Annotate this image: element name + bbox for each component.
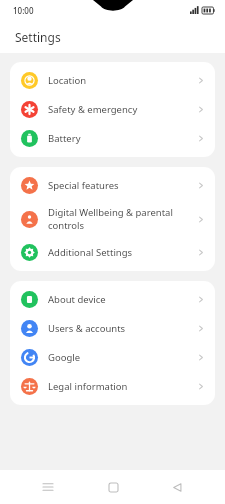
staticText: Additional Settings [48, 246, 191, 259]
staticText: Legal information [48, 380, 191, 393]
button[interactable]: Special features [10, 171, 215, 200]
button[interactable]: Safety & emergency [10, 95, 215, 124]
staticText: 10:00 [13, 5, 34, 16]
button[interactable]: Digital Wellbeing & parental controls [10, 200, 215, 238]
button[interactable]: Additional Settings [10, 238, 215, 267]
button[interactable]: Battery [10, 124, 215, 153]
staticText: Battery [48, 132, 191, 145]
staticText: Users & accounts [48, 322, 191, 335]
button[interactable]: Location [10, 66, 215, 95]
staticText: Safety & emergency [48, 103, 191, 116]
button[interactable]: Recent apps [32, 471, 64, 503]
button[interactable]: Google [10, 343, 215, 372]
staticText: About device [48, 293, 191, 306]
button[interactable]: About device [10, 285, 215, 314]
button[interactable]: Back [161, 471, 193, 503]
staticText: Google [48, 351, 191, 364]
button[interactable]: Home [97, 471, 129, 503]
button[interactable]: Users & accounts [10, 314, 215, 343]
staticText: Settings [15, 29, 61, 45]
staticText: Special features [48, 179, 191, 192]
button[interactable]: Legal information [10, 372, 215, 401]
staticText: Digital Wellbeing & parental controls [48, 206, 191, 232]
staticText: Location [48, 74, 191, 87]
